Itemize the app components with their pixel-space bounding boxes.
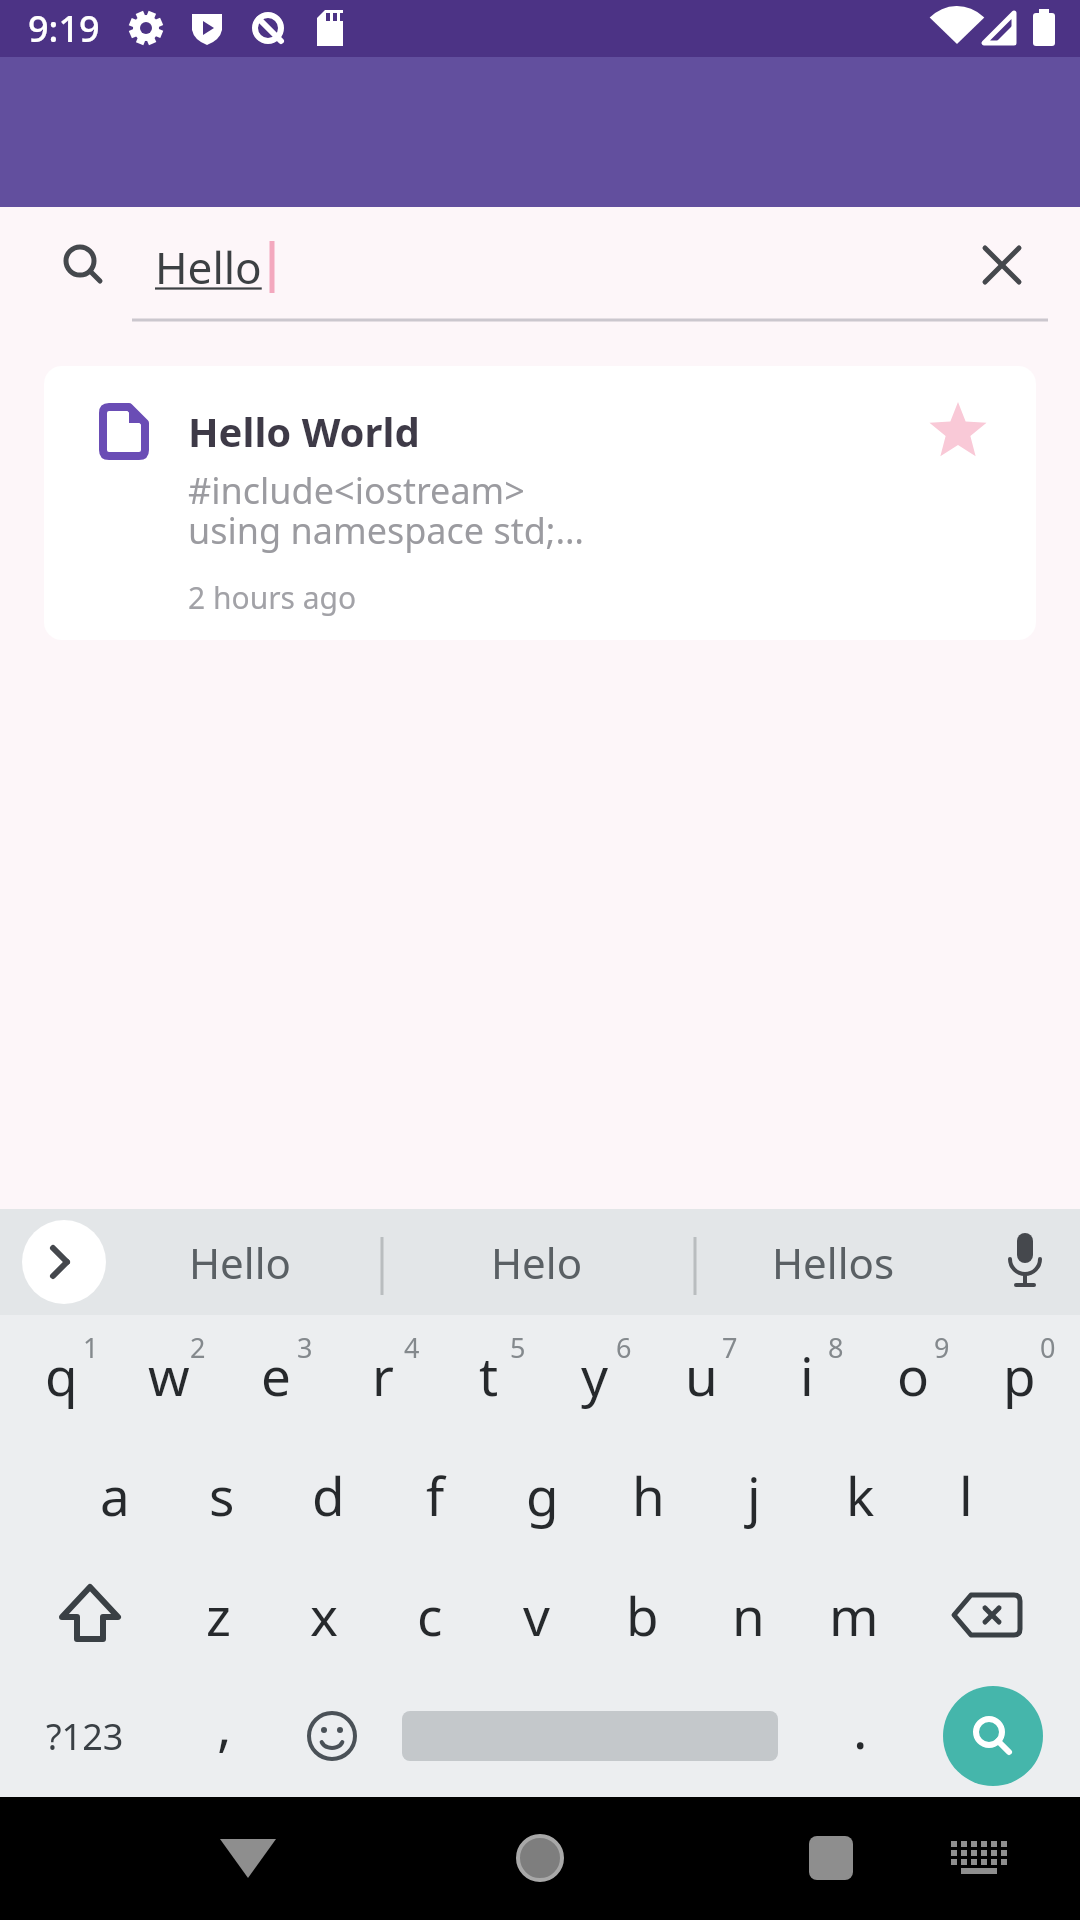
staticText: f — [426, 1459, 445, 1531]
button[interactable]: e — [222, 1315, 329, 1435]
button[interactable] — [22, 1220, 106, 1304]
button[interactable]: , — [170, 1675, 278, 1797]
button[interactable]: w — [115, 1315, 222, 1435]
staticText: 5 — [510, 1329, 526, 1366]
button[interactable]: s — [168, 1435, 275, 1555]
staticText: i — [800, 1339, 814, 1411]
staticText: b — [626, 1579, 659, 1651]
staticText: a — [100, 1459, 130, 1531]
button[interactable]: o — [860, 1315, 966, 1435]
button[interactable]: Hellos — [723, 1209, 943, 1315]
staticText: n — [732, 1579, 765, 1651]
button[interactable]: v — [483, 1555, 589, 1675]
staticText: 9 — [934, 1329, 950, 1366]
staticText: k — [846, 1459, 875, 1531]
button[interactable]: h — [595, 1435, 701, 1555]
staticText: z — [206, 1579, 231, 1651]
button[interactable] — [0, 1797, 360, 1920]
button[interactable]: p — [966, 1315, 1072, 1435]
button[interactable]: r — [329, 1315, 436, 1435]
button[interactable]: c — [377, 1555, 483, 1675]
button[interactable]: z — [165, 1555, 271, 1675]
staticText: g — [526, 1459, 559, 1531]
staticText: , — [217, 1688, 232, 1762]
button[interactable]: Hello World — [44, 366, 1036, 640]
button[interactable]: i — [754, 1315, 860, 1435]
staticText: p — [1003, 1339, 1036, 1411]
button[interactable] — [278, 1675, 386, 1797]
button[interactable]: f — [382, 1435, 489, 1555]
button[interactable]: q — [8, 1315, 115, 1435]
staticText: o — [897, 1339, 930, 1411]
staticText: 9:19 — [28, 4, 100, 53]
staticText: x — [310, 1579, 339, 1651]
button[interactable] — [8, 1555, 165, 1675]
staticText: Hellos — [772, 1234, 895, 1291]
button[interactable]: t — [436, 1315, 542, 1435]
staticText: l — [959, 1459, 973, 1531]
staticText: #include<iostream> using namespace std;… — [188, 466, 584, 555]
button[interactable]: Hello — [130, 1209, 350, 1315]
staticText: 2 — [190, 1329, 206, 1366]
button[interactable]: m — [801, 1555, 907, 1675]
staticText: h — [632, 1459, 665, 1531]
button[interactable] — [943, 1686, 1043, 1786]
staticText: y — [581, 1339, 609, 1411]
staticText: d — [312, 1459, 345, 1531]
button[interactable]: g — [489, 1435, 595, 1555]
staticText: 8 — [828, 1329, 844, 1366]
button[interactable]: j — [701, 1435, 807, 1555]
button[interactable]: ?123 — [0, 1675, 170, 1797]
staticText: v — [523, 1579, 550, 1651]
button[interactable]: a — [61, 1435, 168, 1555]
staticText: 1 — [83, 1329, 99, 1366]
button[interactable]: x — [271, 1555, 377, 1675]
button[interactable]: . — [778, 1675, 943, 1797]
staticText: Hello World — [188, 404, 420, 458]
staticText: Helo — [491, 1234, 583, 1291]
button[interactable]: l — [913, 1435, 1019, 1555]
staticText: r — [372, 1339, 394, 1411]
staticText: 3 — [297, 1329, 313, 1366]
staticText: 2 hours ago — [188, 577, 357, 618]
button[interactable]: n — [695, 1555, 801, 1675]
staticText: u — [685, 1339, 718, 1411]
button[interactable] — [907, 1555, 1072, 1675]
staticText: 4 — [404, 1329, 420, 1366]
button[interactable]: k — [807, 1435, 913, 1555]
staticText: ?123 — [46, 1712, 124, 1761]
staticText: s — [209, 1459, 235, 1531]
button[interactable]: y — [542, 1315, 648, 1435]
button[interactable] — [720, 1797, 1080, 1920]
button[interactable]: d — [275, 1435, 382, 1555]
staticText: Hello — [189, 1234, 291, 1291]
button[interactable] — [360, 1797, 720, 1920]
staticText: Hello — [155, 237, 262, 297]
staticText: q — [45, 1339, 78, 1411]
staticText: 0 — [1040, 1329, 1056, 1366]
staticText: e — [261, 1339, 291, 1411]
staticText: t — [479, 1339, 499, 1411]
staticText: c — [417, 1579, 443, 1651]
staticText: m — [829, 1579, 879, 1651]
staticText: 7 — [722, 1329, 738, 1366]
staticText: . — [853, 1691, 868, 1765]
button[interactable]: b — [589, 1555, 695, 1675]
button[interactable]: Helo — [427, 1209, 647, 1315]
staticText: 6 — [616, 1329, 632, 1366]
button[interactable]: Hello — [0, 207, 1080, 322]
button[interactable]: u — [648, 1315, 754, 1435]
staticText: w — [148, 1339, 190, 1411]
staticText: j — [747, 1459, 761, 1531]
